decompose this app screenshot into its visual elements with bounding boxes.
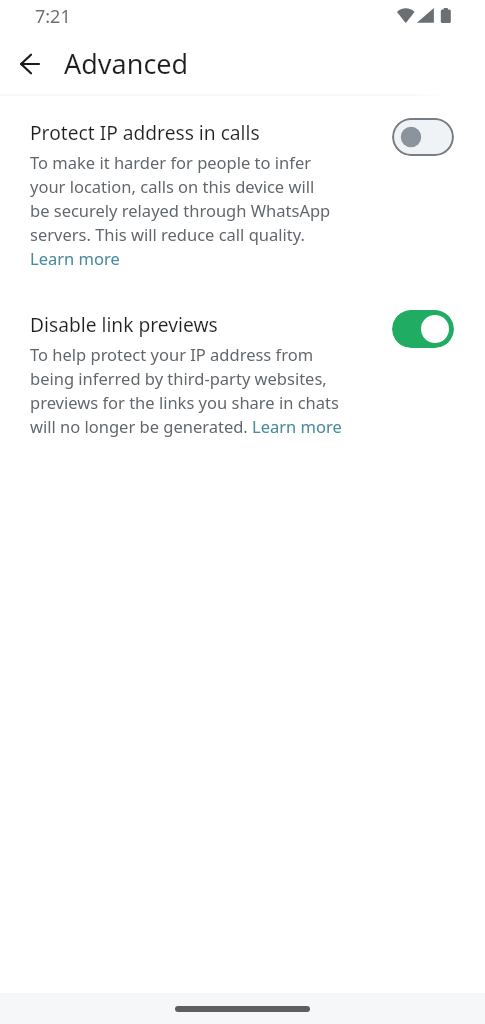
staticText: Advanced [64, 45, 189, 82]
staticText: Protect IP address in calls [30, 119, 260, 145]
button[interactable]: Back [8, 42, 52, 86]
button[interactable]: Toggle off [392, 118, 454, 156]
staticText: 7:21 [35, 4, 71, 29]
button[interactable]: Toggle on [392, 310, 454, 348]
staticText: To help protect your IP address from bei… [30, 343, 390, 438]
button[interactable]: Protect IP address in calls [0, 119, 485, 285]
staticText: To make it harder for people to infer yo… [30, 151, 390, 270]
button[interactable]: Disable link previews [0, 311, 485, 451]
staticText: Disable link previews [30, 311, 218, 337]
